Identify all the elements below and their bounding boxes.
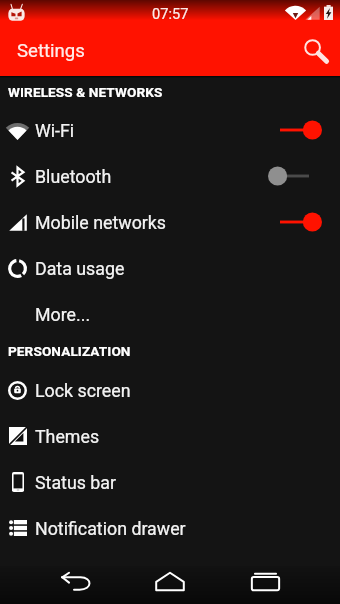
button[interactable]: Back	[53, 562, 99, 600]
staticText: Settings	[17, 40, 85, 62]
button[interactable]: Wi-Fi	[0, 107, 340, 153]
button[interactable]: Notification drawer	[0, 505, 340, 551]
staticText: WIRELESS & NETWORKS	[8, 84, 163, 100]
staticText: Bluetooth	[35, 166, 112, 187]
staticText: PERSONALIZATION	[8, 343, 131, 359]
staticText: Mobile networks	[35, 212, 167, 233]
button[interactable]: Lock screen	[0, 367, 340, 413]
button[interactable]: Data usage	[0, 245, 340, 291]
button[interactable]: Home	[147, 562, 193, 600]
staticText: Themes	[35, 426, 100, 447]
button[interactable]: Bluetooth	[0, 153, 340, 199]
button[interactable]: Search	[296, 31, 336, 71]
staticText: More...	[35, 304, 91, 325]
button[interactable]: Recents	[242, 562, 288, 600]
staticText: Notification drawer	[35, 518, 186, 539]
staticText: 07:57	[152, 5, 189, 22]
staticText: Status bar	[35, 472, 117, 493]
button[interactable]: Themes	[0, 413, 340, 459]
button[interactable]: Status bar	[0, 459, 340, 505]
staticText: Wi-Fi	[35, 120, 75, 141]
staticText: Lock screen	[35, 380, 131, 401]
button[interactable]: More...	[0, 291, 340, 337]
button[interactable]: Mobile networks	[0, 199, 340, 245]
staticText: Data usage	[35, 258, 125, 279]
